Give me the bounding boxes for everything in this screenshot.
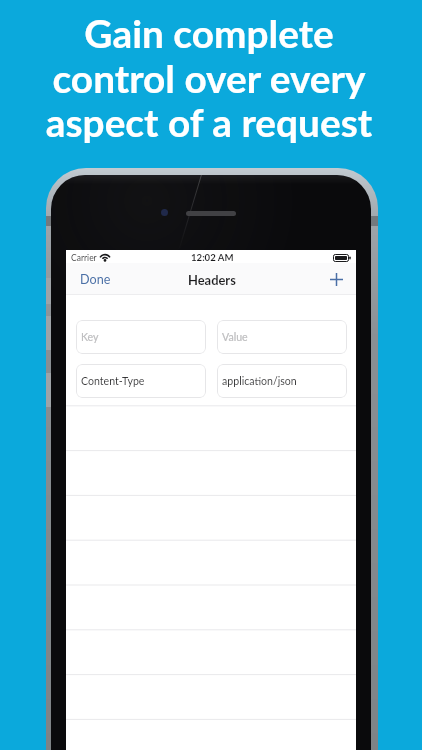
button[interactable]: Value <box>217 320 347 354</box>
button[interactable]: Done <box>66 267 120 292</box>
button[interactable]: Key <box>76 320 206 354</box>
staticText: 12:02 AM <box>191 252 234 264</box>
staticText: Headers <box>188 272 236 287</box>
button[interactable]: application/json <box>217 364 347 398</box>
staticText: Value <box>222 331 248 344</box>
button[interactable] <box>66 713 356 750</box>
staticText: application/json <box>222 375 297 388</box>
staticText: Content-Type <box>81 375 145 388</box>
staticText: Done <box>80 272 111 287</box>
staticText: Gain complete control over every aspect … <box>0 10 420 145</box>
button[interactable]: Add header <box>323 268 356 291</box>
staticText: Carrier <box>71 253 97 263</box>
staticText: Key <box>81 331 99 344</box>
button[interactable]: Content-Type <box>76 364 206 398</box>
